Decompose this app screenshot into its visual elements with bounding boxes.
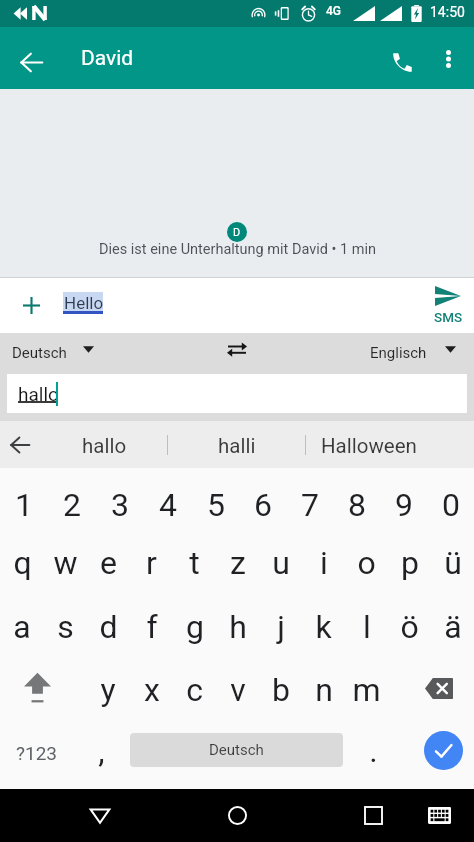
button[interactable]: 4 [144,468,192,532]
button[interactable]: . [343,725,403,789]
staticText: j [277,608,285,646]
button[interactable]: i [302,532,345,596]
button[interactable]: Swap languages [219,336,255,372]
button[interactable]: a [0,596,44,660]
staticText: y [100,671,116,709]
button[interactable]: 3 [96,468,144,532]
button[interactable]: More options [428,39,468,79]
button[interactable]: l [345,596,388,660]
button[interactable]: Recents [343,789,403,842]
staticText: ü [444,544,462,582]
button[interactable]: Back [0,421,42,468]
button[interactable]: e [87,532,130,596]
button[interactable]: x [130,660,173,725]
button[interactable]: p [388,532,431,596]
button[interactable]: ?123 [0,725,73,789]
button[interactable]: j [259,596,302,660]
staticText: 8 [348,486,366,524]
staticText: 0 [442,486,460,524]
button[interactable]: Call [379,39,425,85]
button[interactable]: m [345,660,388,725]
staticText: n [315,671,333,709]
staticText: u [272,544,290,582]
staticText: o [357,544,376,582]
button[interactable]: SMS [420,277,474,333]
staticText: l [363,608,371,646]
staticText: hallo [18,383,59,405]
button[interactable]: Deutsch [130,733,343,767]
staticText: Deutsch [12,344,67,362]
button[interactable]: r [130,532,173,596]
button[interactable]: hallo [42,421,167,468]
button[interactable]: 9 [380,468,427,532]
button[interactable]: Back [8,39,55,86]
button[interactable]: 1 [0,468,48,532]
staticText: 9 [395,486,413,524]
button[interactable]: k [302,596,345,660]
staticText: h [229,608,247,646]
button[interactable]: t [173,532,216,596]
button[interactable]: ö [388,596,431,660]
staticText: a [13,608,31,646]
button[interactable]: 5 [192,468,239,532]
button[interactable]: f [130,596,173,660]
button[interactable]: d [87,596,130,660]
staticText: 4 [159,486,177,524]
staticText: 14:50 [430,4,465,20]
button[interactable]: Back [70,789,130,842]
staticText: 4G [326,4,341,18]
staticText: k [315,608,332,646]
staticText: f [146,608,158,646]
staticText: t [189,544,200,582]
button[interactable]: Enter [403,725,474,789]
button[interactable]: Hello [63,292,103,314]
staticText: g [186,608,204,646]
button[interactable]: w [44,532,87,596]
staticText: r [146,544,157,582]
button[interactable]: halli [168,421,305,468]
button[interactable]: g [173,596,216,660]
button[interactable]: n [302,660,345,725]
staticText: z [230,544,246,582]
button[interactable]: ü [431,532,474,596]
button[interactable]: 6 [239,468,286,532]
button[interactable]: h [216,596,259,660]
staticText: x [144,671,160,709]
staticText: Deutsch [209,741,264,759]
button[interactable]: Keyboard [415,789,463,842]
button[interactable]: z [216,532,259,596]
button[interactable]: v [216,660,259,725]
button[interactable]: y [86,660,130,725]
button[interactable]: 2 [48,468,96,532]
button[interactable]: Home [207,789,267,842]
button[interactable]: 7 [286,468,333,532]
button[interactable]: Shift [0,660,86,725]
button[interactable]: Deutsch [12,333,94,374]
staticText: Englisch [370,344,427,362]
button[interactable]: ä [431,596,474,660]
button[interactable]: u [259,532,302,596]
button[interactable]: 8 [333,468,380,532]
staticText: 3 [111,486,129,524]
button[interactable]: Attach [10,284,52,326]
staticText: b [272,671,290,709]
button[interactable]: b [259,660,302,725]
staticText: ö [400,608,419,646]
staticText: s [57,608,74,646]
staticText: w [53,544,78,582]
staticText: c [186,671,203,709]
staticText: Halloween [321,434,417,458]
button[interactable]: 0 [427,468,474,532]
staticText: D [233,226,241,239]
button[interactable]: o [345,532,388,596]
staticText: 2 [63,486,81,524]
staticText: 5 [207,486,225,524]
button[interactable]: c [173,660,216,725]
button[interactable]: q [0,532,44,596]
button[interactable]: Backspace [388,660,474,725]
staticText: p [401,544,419,582]
button[interactable]: Halloween [306,421,432,468]
button[interactable]: Englisch [370,333,456,374]
button[interactable]: , [73,725,130,789]
button[interactable]: s [44,596,87,660]
